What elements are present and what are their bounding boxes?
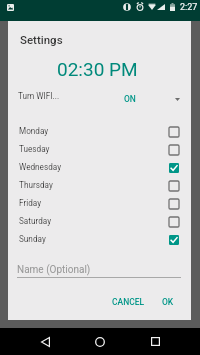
- staticText: Wednesday: [19, 162, 62, 172]
- button[interactable]: Wednesday: [8, 159, 191, 177]
- button[interactable]: OK: [157, 293, 179, 311]
- staticText: Turn WIFI...: [18, 91, 60, 101]
- button[interactable]: Recents: [141, 328, 169, 355]
- staticText: ON: [124, 94, 136, 104]
- button[interactable]: Saturday: [8, 213, 191, 231]
- staticText: Tuesday: [19, 144, 50, 154]
- staticText: Monday: [19, 126, 49, 136]
- button[interactable]: Tuesday: [8, 141, 191, 159]
- button[interactable]: Thursday: [8, 177, 191, 195]
- staticText: Thursday: [19, 180, 53, 190]
- staticText: 2:27: [180, 2, 198, 13]
- button[interactable]: Monday: [8, 123, 191, 141]
- staticText: Saturday: [19, 216, 52, 226]
- staticText: CANCEL: [112, 297, 145, 307]
- button[interactable]: Back: [31, 328, 59, 355]
- button[interactable]: Sunday: [8, 231, 191, 249]
- staticText: OK: [162, 297, 174, 307]
- staticText: Settings: [20, 33, 63, 46]
- button[interactable]: Home: [86, 328, 114, 355]
- button[interactable]: ON: [124, 92, 180, 106]
- button[interactable]: CANCEL: [108, 293, 149, 311]
- staticText: Friday: [19, 198, 42, 208]
- button[interactable]: Friday: [8, 195, 191, 213]
- staticText: Sunday: [19, 234, 46, 244]
- staticText: 02:30 PM: [57, 58, 138, 80]
- staticText: Name (Optional): [17, 264, 91, 276]
